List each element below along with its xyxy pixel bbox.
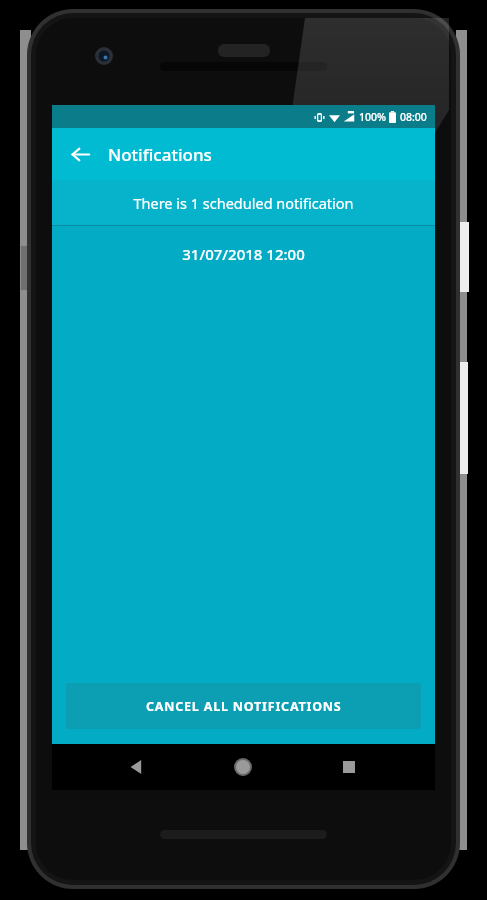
- staticText: 100%: [359, 110, 386, 124]
- staticText: Notifications: [108, 143, 212, 166]
- staticText: 08:00: [400, 110, 427, 124]
- button[interactable]: Home: [221, 745, 265, 789]
- button[interactable]: 31/07/2018 12:00: [52, 226, 435, 281]
- staticText: There is 1 scheduled notification: [133, 193, 354, 213]
- button[interactable]: Back: [115, 745, 159, 789]
- staticText: 31/07/2018 12:00: [182, 244, 305, 264]
- staticText: CANCEL ALL NOTIFICATIONS: [146, 698, 342, 715]
- button[interactable]: CANCEL ALL NOTIFICATIONS: [66, 683, 421, 729]
- button[interactable]: Recent apps: [327, 745, 371, 789]
- button[interactable]: Navigate up: [52, 128, 108, 180]
